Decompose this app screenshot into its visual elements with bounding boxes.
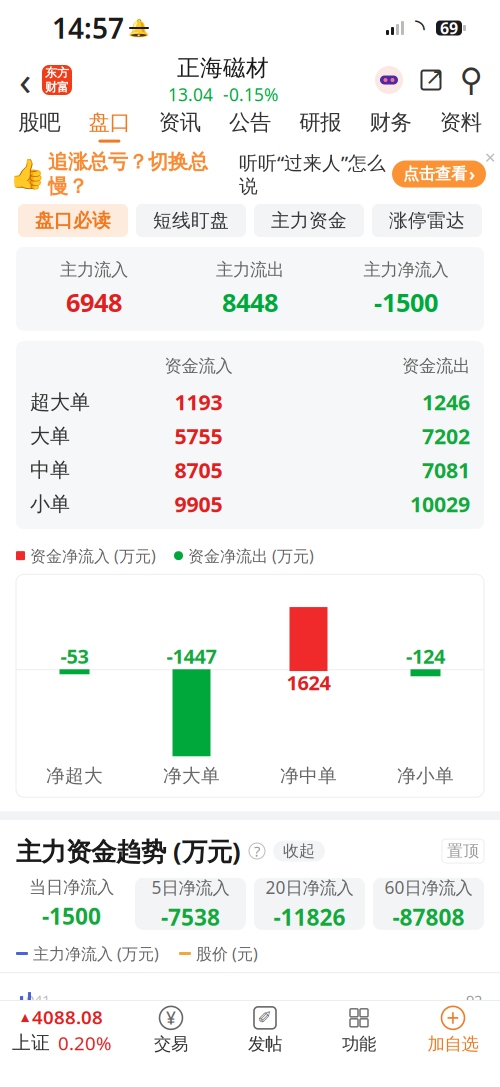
button[interactable]: 研报 [285, 104, 355, 148]
staticText: 5日净流入 [151, 876, 229, 899]
button[interactable]: ✐ [218, 1002, 312, 1058]
staticText: 0.20% [58, 1030, 112, 1055]
staticText: 功能 [342, 1033, 376, 1055]
staticText: 6948 [66, 285, 122, 319]
button[interactable]: ▲ [0, 1002, 124, 1058]
button[interactable]: 涨停雷达 [372, 204, 482, 237]
button[interactable]: 公告 [215, 104, 285, 148]
staticText: 4088.08 [32, 1005, 103, 1029]
button[interactable]: 5日净流入 [135, 878, 246, 930]
staticText: 研报 [299, 109, 341, 136]
button[interactable]: ¥ [124, 1002, 218, 1058]
staticText: 资料 [440, 109, 482, 136]
staticText: 东方 [45, 65, 69, 80]
button[interactable]: 👍 [0, 149, 500, 199]
staticText: 主力流出 [216, 259, 284, 280]
button[interactable]: + [406, 1002, 500, 1058]
staticText: 小单 [30, 492, 70, 516]
staticText: 净中单 [280, 764, 337, 787]
staticText: 20日净流入 [265, 876, 353, 899]
button[interactable]: 主力资金 [254, 204, 364, 237]
button[interactable]: Back [8, 58, 42, 102]
button[interactable]: 说明 [249, 843, 265, 859]
button[interactable]: 资料 [426, 104, 496, 148]
staticText: 财务 [370, 109, 412, 136]
staticText: ? [254, 841, 260, 861]
button[interactable]: 置顶 [442, 839, 484, 863]
staticText: 股吧 [18, 109, 60, 136]
button[interactable]: 短线盯盘 [136, 204, 246, 237]
staticText: 净超大 [46, 764, 103, 787]
button[interactable]: 功能 [312, 1002, 406, 1058]
staticText: 上证 [12, 1031, 50, 1054]
button[interactable]: 关闭广告 [482, 150, 498, 166]
staticText: 资金净流入 (万元) [30, 545, 156, 566]
staticText: 点击查看 [403, 164, 467, 184]
button[interactable]: 股吧 [4, 104, 74, 148]
staticText: 92 [466, 990, 482, 1010]
staticText: ¥ [166, 1006, 176, 1029]
staticText: -7538 [161, 902, 220, 932]
staticText: 收起 [283, 841, 315, 861]
button[interactable]: 盘口必读 [18, 204, 128, 237]
staticText: 涨停雷达 [389, 209, 465, 232]
staticText: 69 [440, 17, 458, 39]
staticText: 大单 [30, 424, 70, 448]
staticText: 1246 [422, 388, 470, 416]
staticText: 5755 [174, 422, 222, 450]
button[interactable]: AI 助手 [374, 65, 404, 95]
staticText: 交易 [154, 1033, 188, 1055]
button[interactable]: 东方财富 首页 [42, 65, 72, 95]
staticText: 超大单 [30, 390, 90, 414]
staticText: 8448 [222, 285, 278, 319]
staticText: 主力资金 [271, 209, 347, 232]
staticText: 7081 [422, 456, 470, 484]
staticText: -53 [60, 643, 88, 669]
button[interactable]: 当日净流入 [16, 878, 127, 930]
staticText: ✐ [257, 1008, 272, 1028]
staticText: ✕ [484, 150, 496, 166]
staticText: 主力流入 [60, 259, 128, 280]
staticText: 主力净流入 (万元) [33, 943, 159, 964]
staticText: 主力资金趋势 (万元) [16, 834, 241, 868]
staticText: 资金流出 [402, 355, 470, 377]
staticText: 净大单 [163, 764, 220, 787]
staticText: 👍 [8, 157, 45, 191]
button[interactable]: 盘口 [74, 104, 145, 148]
staticText: -0.15% [223, 83, 278, 106]
staticText: 中单 [30, 458, 70, 482]
staticText: 1624 [286, 669, 330, 696]
button[interactable]: 财务 [355, 104, 426, 148]
staticText: 🔔 [128, 18, 150, 38]
staticText: 13.04 [168, 83, 213, 106]
staticText: 资讯 [159, 109, 201, 136]
button[interactable]: 资讯 [145, 104, 215, 148]
staticText: 发帖 [248, 1033, 282, 1055]
staticText: 净小单 [397, 764, 454, 787]
button[interactable]: Search [458, 67, 484, 93]
button[interactable]: 20日净流入 [254, 878, 365, 930]
staticText: 财富 [45, 80, 69, 95]
staticText: -124 [406, 643, 445, 669]
staticText: + [446, 1003, 459, 1033]
staticText: -1500 [42, 901, 101, 931]
staticText: -1500 [374, 285, 438, 319]
button[interactable]: 60日净流入 [373, 878, 484, 930]
staticText: 加自选 [427, 1033, 478, 1055]
staticText: 资金净流出 (万元) [188, 545, 314, 566]
staticText: ◝ [415, 14, 425, 42]
staticText: ▲ [21, 1011, 29, 1023]
staticText: 听听“过来人”怎么说 [239, 150, 386, 198]
staticText: 9905 [174, 490, 222, 518]
staticText: 1041 [18, 990, 50, 1010]
staticText: 盘口必读 [35, 209, 111, 232]
button[interactable]: 收起 [273, 840, 325, 861]
button[interactable]: Share [418, 67, 444, 93]
staticText: › [469, 162, 475, 185]
staticText: 置顶 [447, 841, 479, 861]
staticText: ⚲ [459, 62, 482, 98]
staticText: -87808 [392, 902, 464, 932]
staticText: 1193 [174, 388, 222, 416]
